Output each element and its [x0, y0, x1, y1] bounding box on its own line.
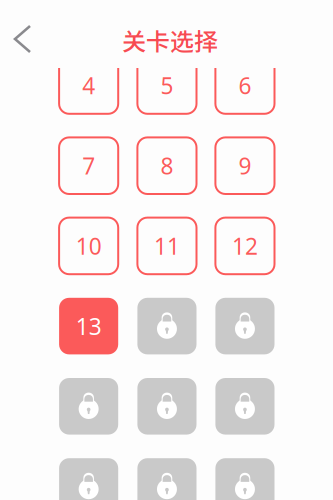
- button[interactable]: Level 12: [215, 218, 274, 274]
- staticText: 5: [160, 70, 173, 100]
- staticText: 6: [238, 70, 251, 100]
- button[interactable]: Level 19, locked: [59, 458, 118, 500]
- staticText: 12: [232, 231, 258, 261]
- staticText: 关卡选择: [122, 23, 218, 57]
- staticText: 11: [154, 231, 180, 261]
- button[interactable]: Level 4: [59, 57, 118, 114]
- button[interactable]: Level 18, locked: [215, 378, 274, 435]
- button[interactable]: Level 9: [215, 137, 274, 194]
- button[interactable]: Level 5: [137, 57, 196, 114]
- button[interactable]: Level 11: [137, 218, 196, 274]
- staticText: 8: [160, 151, 173, 181]
- button[interactable]: Back: [0, 15, 45, 61]
- button[interactable]: Level 15, locked: [215, 298, 274, 354]
- button[interactable]: Level 16, locked: [59, 378, 118, 435]
- button[interactable]: Level 8: [137, 137, 196, 194]
- staticText: 10: [76, 231, 102, 261]
- staticText: 4: [82, 70, 95, 100]
- button[interactable]: Level 20, locked: [137, 458, 196, 500]
- button[interactable]: Level 17, locked: [137, 378, 196, 435]
- button[interactable]: Level 14, locked: [137, 298, 196, 354]
- button[interactable]: Level 10: [59, 218, 118, 274]
- staticText: 13: [76, 311, 102, 341]
- button[interactable]: Level 7: [59, 137, 118, 194]
- staticText: 9: [238, 151, 251, 181]
- button[interactable]: Level 6: [215, 57, 274, 114]
- button[interactable]: Level 13: [59, 298, 118, 354]
- button[interactable]: Level 21, locked: [215, 458, 274, 500]
- staticText: 7: [82, 151, 95, 181]
